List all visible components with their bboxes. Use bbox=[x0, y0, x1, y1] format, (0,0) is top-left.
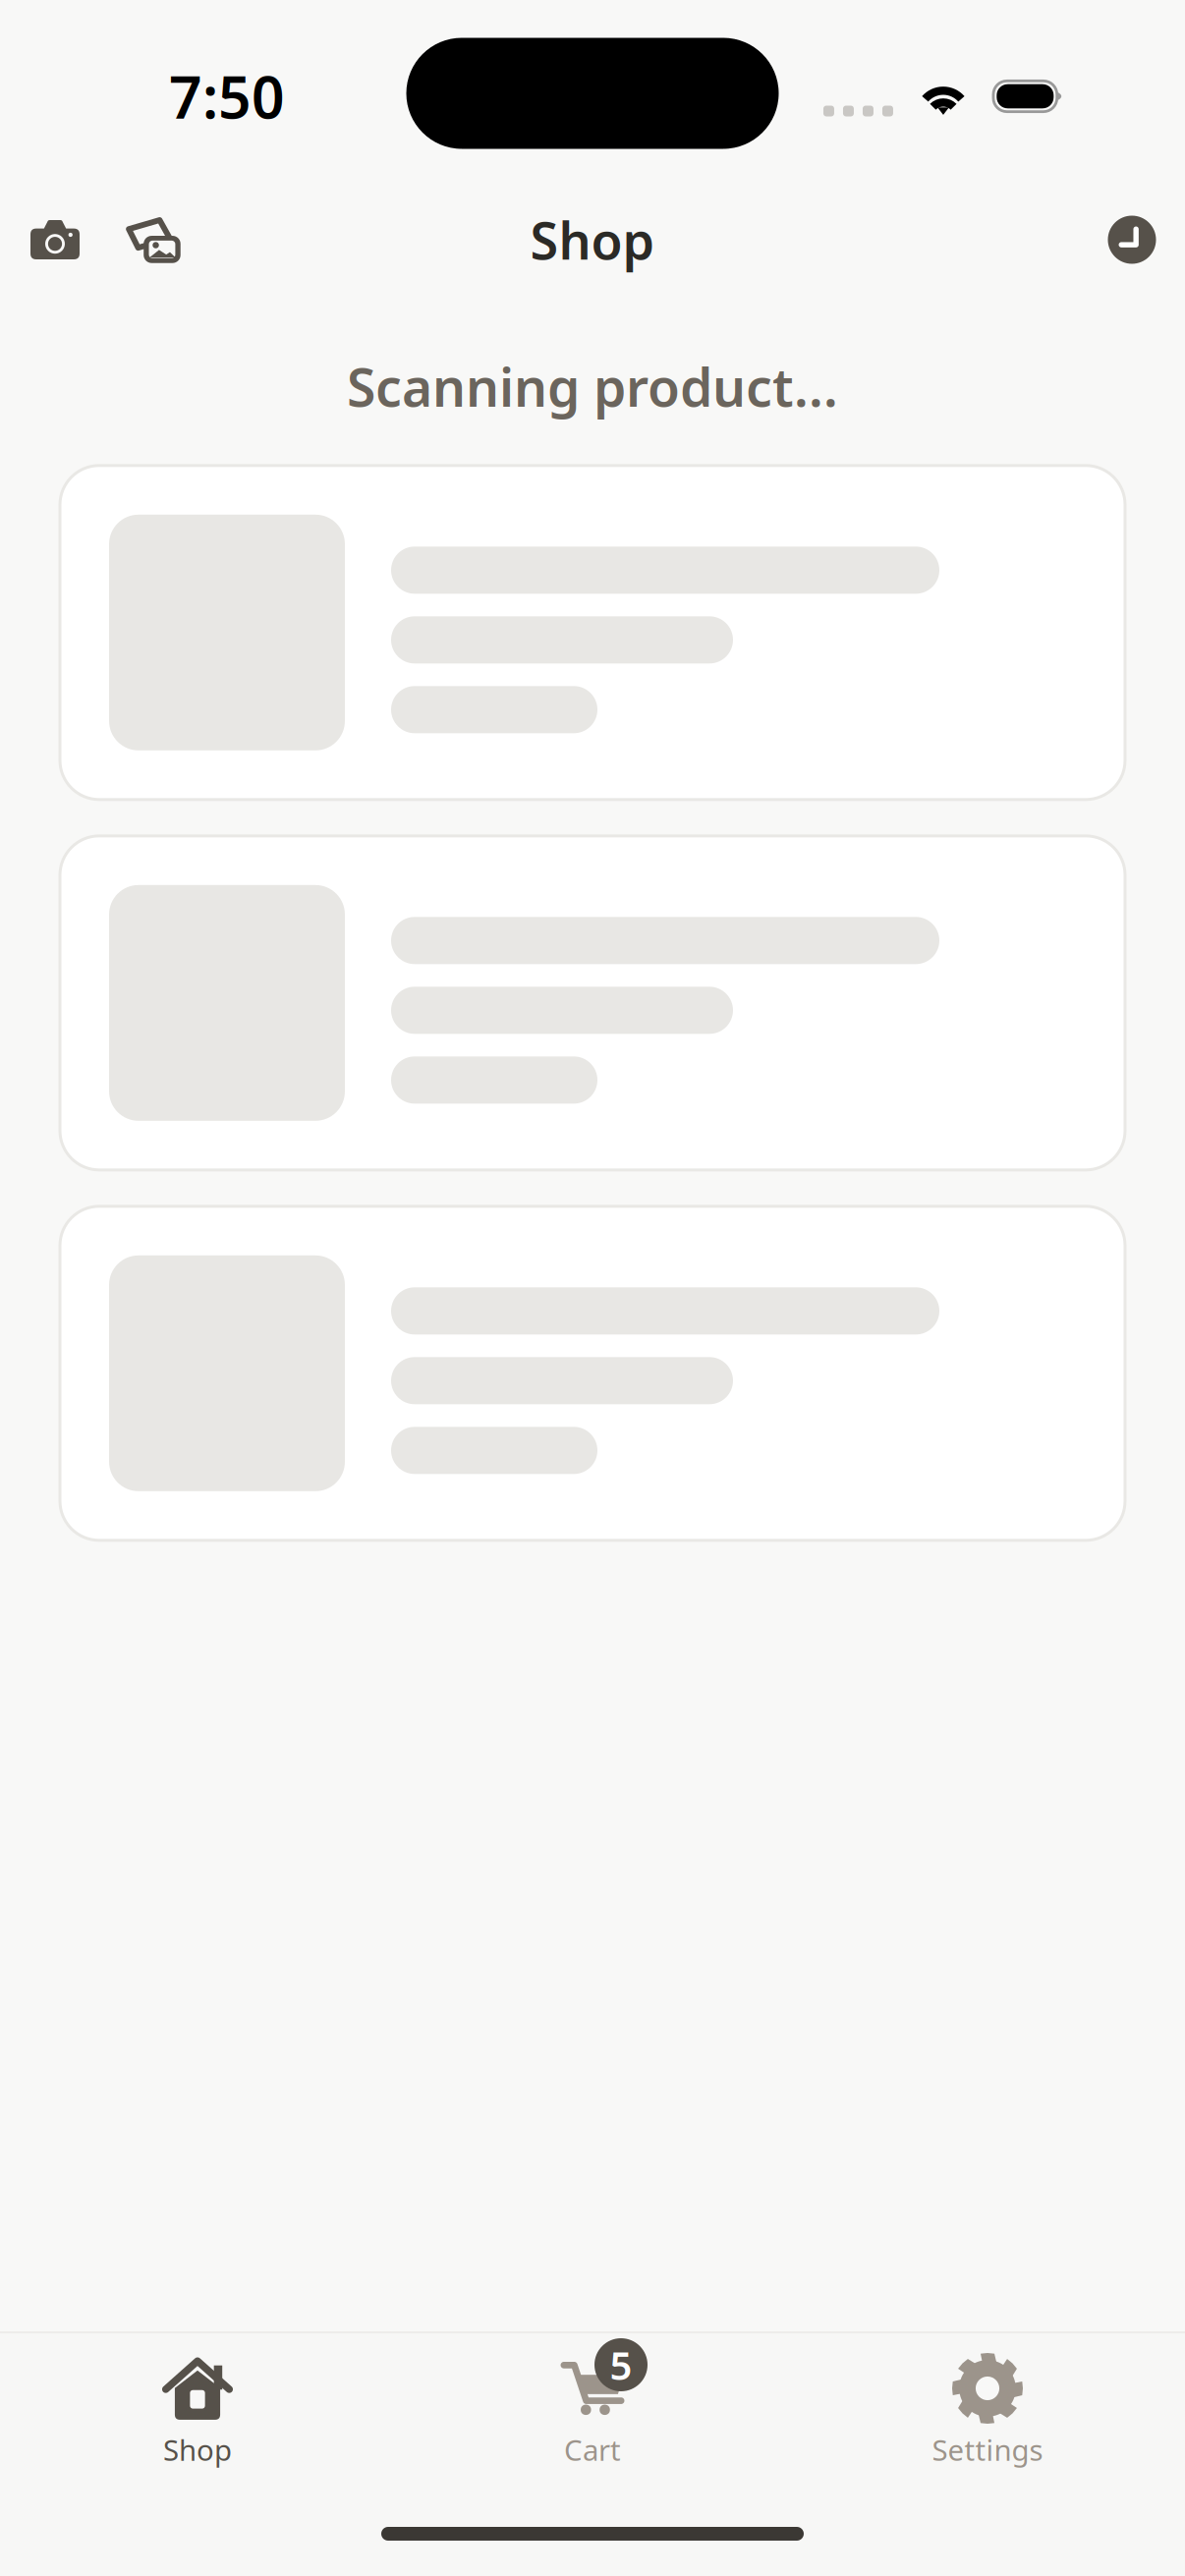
staticText: 5 bbox=[610, 2339, 632, 2391]
button[interactable]: Settings bbox=[790, 2346, 1185, 2469]
staticText: Shop bbox=[163, 2431, 232, 2469]
staticText: Cart bbox=[564, 2431, 621, 2469]
staticText: 7:50 bbox=[169, 58, 285, 134]
staticText: Settings bbox=[932, 2431, 1043, 2469]
button[interactable] bbox=[60, 465, 1125, 800]
staticText: Scanning product... bbox=[347, 352, 838, 421]
button[interactable]: Scan history bbox=[1085, 193, 1179, 287]
staticText: Shop bbox=[530, 206, 655, 274]
button[interactable] bbox=[60, 836, 1125, 1170]
button[interactable]: Shop bbox=[0, 2346, 395, 2469]
button[interactable]: Scan with camera bbox=[5, 193, 105, 287]
button[interactable]: Choose from photos bbox=[105, 193, 201, 287]
button[interactable]: 5 bbox=[395, 2346, 790, 2469]
button[interactable] bbox=[60, 1206, 1125, 1540]
